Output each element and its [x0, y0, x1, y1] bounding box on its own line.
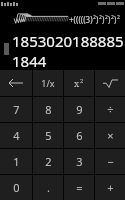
button[interactable]: Add — [95, 175, 125, 200]
staticText: 4 — [13, 128, 20, 143]
staticText: 2 — [117, 14, 120, 21]
button[interactable]: 2 — [33, 149, 63, 174]
staticText: ) — [114, 14, 117, 25]
button[interactable]: 0 — [0, 175, 32, 200]
staticText: 2 — [93, 14, 96, 21]
staticText: 2 — [80, 77, 84, 85]
staticText: ) — [96, 14, 99, 25]
button[interactable]: 1/x — [33, 70, 63, 96]
staticText: +(((((3) — [69, 14, 93, 25]
staticText: . — [47, 180, 50, 195]
staticText: + — [107, 180, 114, 195]
button[interactable]: Subtract — [95, 149, 125, 174]
button[interactable]: Divide — [95, 97, 125, 122]
button[interactable]: 1 — [0, 149, 32, 174]
button[interactable]: 9 — [64, 97, 94, 122]
button[interactable]: Multiply — [95, 123, 125, 148]
staticText: 2 — [105, 14, 108, 21]
button[interactable]: Square — [64, 70, 94, 96]
staticText: 3 — [76, 154, 83, 169]
staticText: ) — [108, 14, 111, 25]
staticText: 2 — [111, 14, 114, 21]
staticText: 2 — [99, 14, 102, 21]
button[interactable]: Square root — [95, 70, 125, 96]
staticText: ÷ — [107, 102, 114, 117]
staticText: 0 — [13, 180, 20, 195]
staticText: 2 — [45, 154, 52, 169]
staticText: 1 — [13, 154, 20, 169]
staticText: 5 — [45, 128, 52, 143]
staticText: × — [107, 128, 114, 143]
staticText: = — [76, 180, 83, 195]
staticText: 7 — [13, 102, 20, 117]
button[interactable]: Equals — [64, 175, 94, 200]
button[interactable]: 5 — [33, 123, 63, 148]
staticText: 8 — [45, 102, 52, 117]
staticText: 9 — [76, 102, 83, 117]
button[interactable]: 7 — [0, 97, 32, 122]
button[interactable]: 6 — [64, 123, 94, 148]
staticText: 1/x — [41, 77, 55, 89]
button[interactable]: Backspace — [0, 70, 32, 96]
button[interactable]: 8 — [33, 97, 63, 122]
button[interactable]: . — [33, 175, 63, 200]
staticText: − — [107, 154, 114, 169]
button[interactable]: 3 — [64, 149, 94, 174]
button[interactable]: 4 — [0, 123, 32, 148]
staticText: ) — [102, 14, 105, 25]
staticText: 18530201888851844 — [12, 31, 125, 67]
staticText: 6 — [76, 128, 83, 143]
staticText: x — [74, 77, 80, 89]
